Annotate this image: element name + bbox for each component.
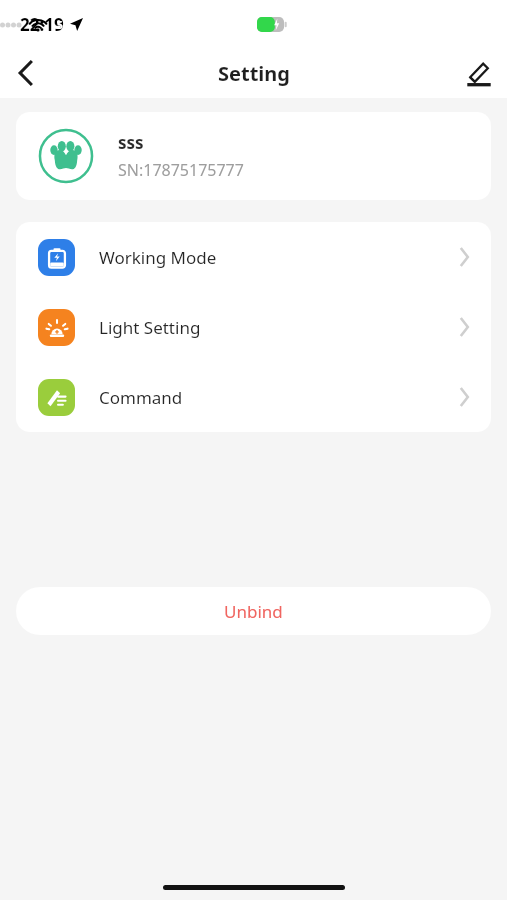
- staticText: SN:17875175777: [118, 159, 244, 181]
- button[interactable]: Back: [0, 48, 52, 98]
- staticText: sss: [118, 131, 144, 154]
- staticText: Working Mode: [99, 246, 459, 269]
- staticText: 53: [57, 18, 69, 32]
- button[interactable]: Command: [16, 362, 491, 432]
- button[interactable]: Working Mode: [16, 222, 491, 292]
- staticText: Light Setting: [99, 316, 459, 339]
- button[interactable]: sss: [16, 112, 491, 200]
- staticText: 22:19: [20, 13, 64, 36]
- button[interactable]: Unbind: [16, 587, 491, 635]
- button[interactable]: Light Setting: [16, 292, 491, 362]
- button[interactable]: Edit: [451, 48, 507, 98]
- staticText: Unbind: [224, 600, 283, 623]
- staticText: Setting: [218, 60, 290, 87]
- staticText: Command: [99, 386, 459, 409]
